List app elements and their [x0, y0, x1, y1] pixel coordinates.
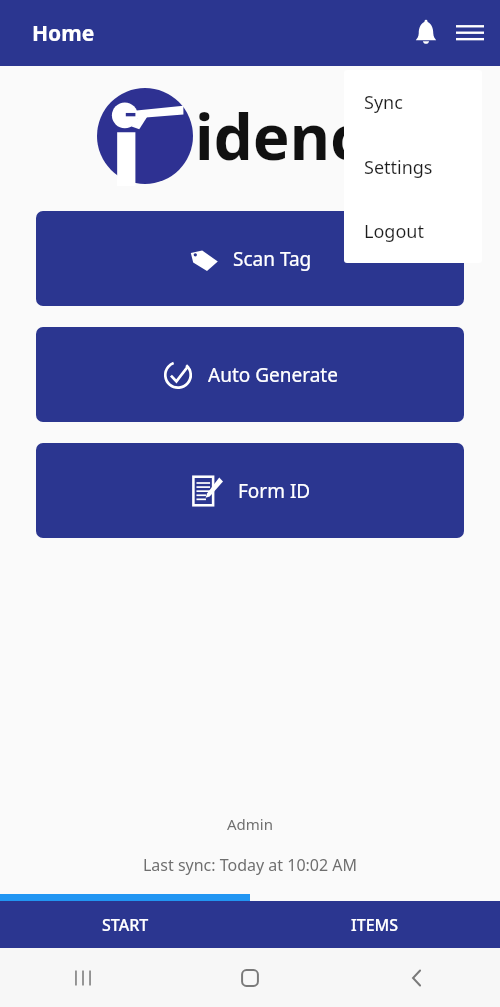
staticText: Logout [364, 219, 424, 244]
staticText: Home [32, 19, 95, 48]
button[interactable]: Auto Generate [36, 327, 464, 422]
staticText: Admin [0, 814, 500, 834]
staticText: Auto Generate [208, 362, 338, 388]
button[interactable]: ITEMS [250, 901, 500, 948]
staticText: Scan Tag [233, 246, 312, 272]
staticText: idenc [195, 94, 363, 178]
button[interactable]: Menu [448, 11, 492, 55]
staticText: Settings [364, 155, 433, 180]
staticText: Sync [364, 90, 403, 115]
button[interactable]: Scan Tag [36, 211, 464, 306]
button[interactable]: Notifications [404, 11, 448, 55]
button[interactable]: Sync [344, 70, 482, 135]
button[interactable]: Settings [344, 135, 482, 199]
button[interactable]: Logout [344, 199, 482, 263]
button[interactable]: START [0, 901, 250, 948]
staticText: ITEMS [351, 914, 399, 936]
staticText: Form ID [238, 478, 311, 504]
staticText: START [102, 914, 149, 936]
staticText: Last sync: Today at 10:02 AM [0, 854, 500, 876]
button[interactable]: Form ID [36, 443, 464, 538]
